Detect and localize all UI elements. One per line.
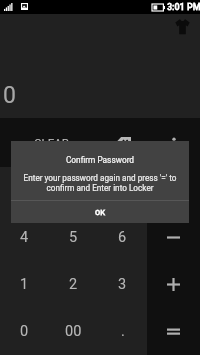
staticText: Confirm Password [11, 155, 189, 165]
button[interactable]: 1 [0, 261, 49, 308]
button[interactable]: Equals [147, 308, 200, 355]
button[interactable]: 9 [98, 167, 147, 214]
button[interactable]: 3 [98, 261, 147, 308]
button[interactable]: 4 [0, 214, 49, 261]
button[interactable]: 5 [49, 214, 98, 261]
button[interactable]: CLEAR [0, 118, 103, 167]
button[interactable]: . [98, 308, 147, 355]
staticText: 8 [69, 182, 78, 199]
staticText: 0 [20, 323, 29, 340]
staticText: 3:01 PM [167, 2, 200, 13]
button[interactable]: 00 [49, 308, 98, 355]
staticText: 5 [69, 229, 78, 246]
staticText: Enter your password again and press '=' … [11, 173, 189, 193]
button[interactable]: 8 [49, 167, 98, 214]
staticText: 4 [20, 229, 29, 246]
staticText: CLEAR [34, 136, 69, 149]
staticText: 0 [3, 82, 16, 109]
button[interactable]: Divide [147, 118, 200, 167]
staticText: 6 [118, 229, 127, 246]
staticText: 3 [118, 276, 127, 293]
staticText: OK [95, 208, 105, 217]
button[interactable]: 6 [98, 214, 147, 261]
button[interactable]: OK [11, 201, 189, 223]
staticText: 1 [20, 276, 29, 293]
button[interactable]: 2 [49, 261, 98, 308]
staticText: 00 [65, 323, 82, 340]
button[interactable]: Theme [175, 18, 190, 35]
staticText: 9 [118, 182, 127, 199]
button[interactable]: Backspace [103, 118, 143, 167]
button[interactable]: Plus [147, 261, 200, 308]
button[interactable]: Multiply [147, 167, 200, 214]
button[interactable]: 7 [0, 167, 49, 214]
staticText: 2 [69, 276, 78, 293]
staticText: . [121, 323, 125, 340]
button[interactable]: 0 [0, 308, 49, 355]
button[interactable]: Minus [147, 214, 200, 261]
